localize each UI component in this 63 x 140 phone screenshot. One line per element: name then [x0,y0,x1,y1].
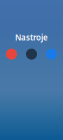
staticText: Nastroje [15,32,48,43]
